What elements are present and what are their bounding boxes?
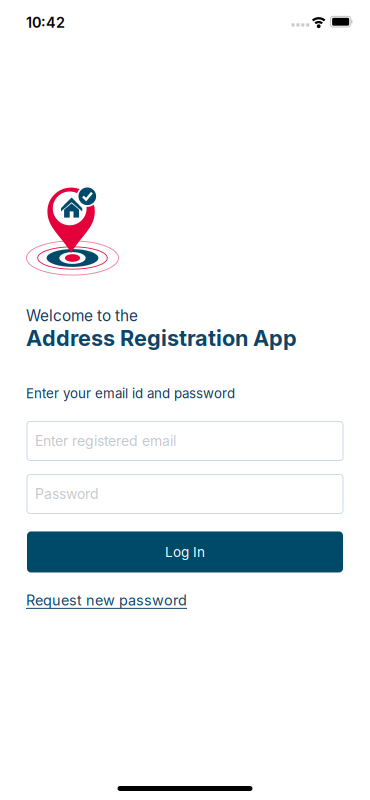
staticText: Password: [35, 485, 99, 502]
staticText: Enter registered email: [35, 432, 176, 449]
button[interactable]: Request new password: [26, 591, 187, 609]
staticText: Enter your email id and password: [26, 385, 235, 401]
staticText: 10:42: [26, 14, 65, 31]
staticText: Log In: [165, 544, 205, 560]
button[interactable]: Log In: [27, 531, 343, 572]
staticText: Address Registration App: [26, 325, 297, 351]
staticText: Welcome to the: [26, 306, 138, 325]
staticText: Request new password: [26, 591, 187, 609]
